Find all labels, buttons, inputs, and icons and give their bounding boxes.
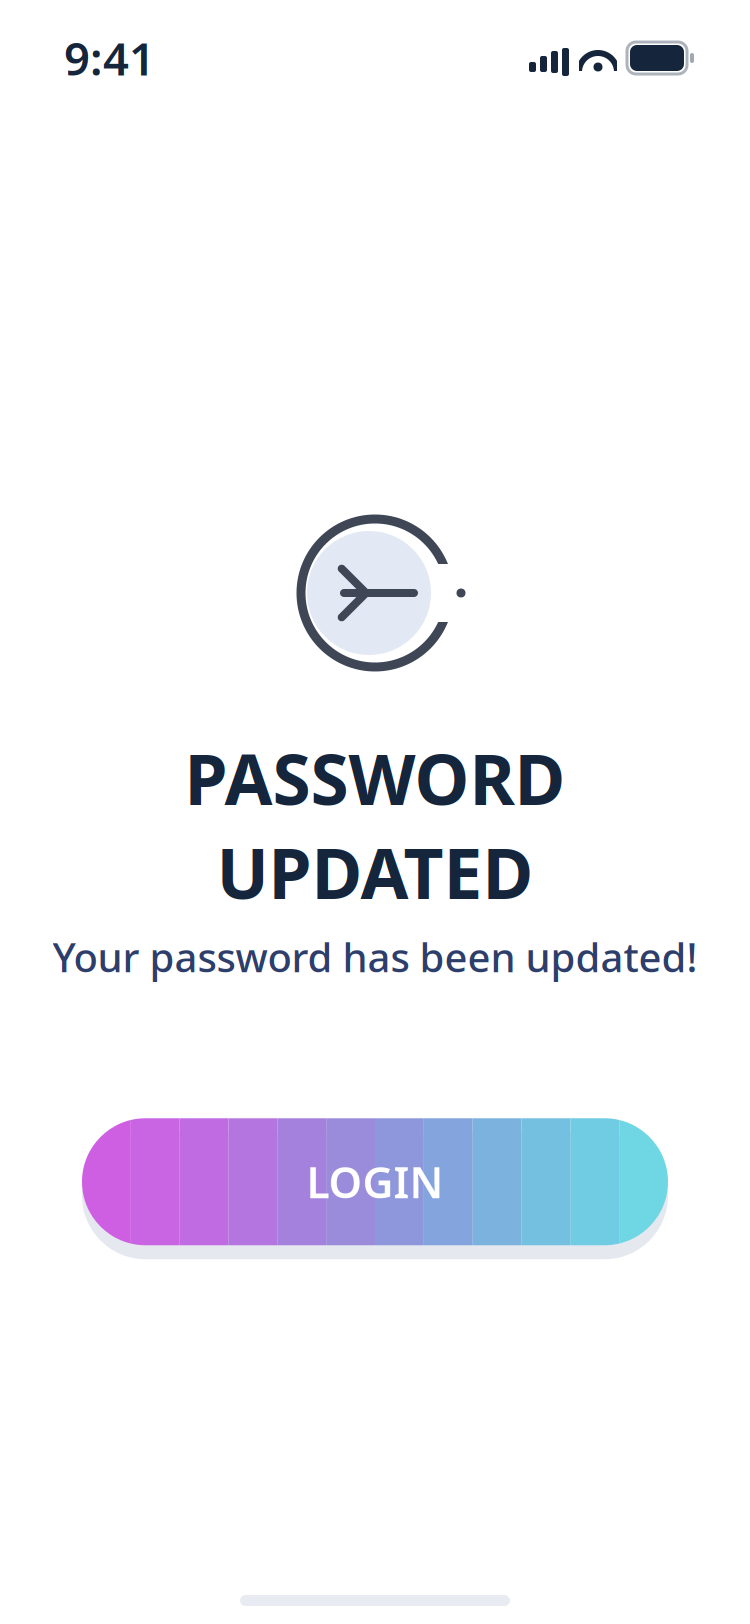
staticText: 9:41 [64,28,155,88]
staticText: LOGIN [306,1153,443,1210]
staticText: PASSWORD [184,732,565,824]
staticText: UPDATED [216,826,533,918]
button[interactable]: LOGIN [82,1118,668,1245]
staticText: Your password has been updated! [52,930,697,983]
